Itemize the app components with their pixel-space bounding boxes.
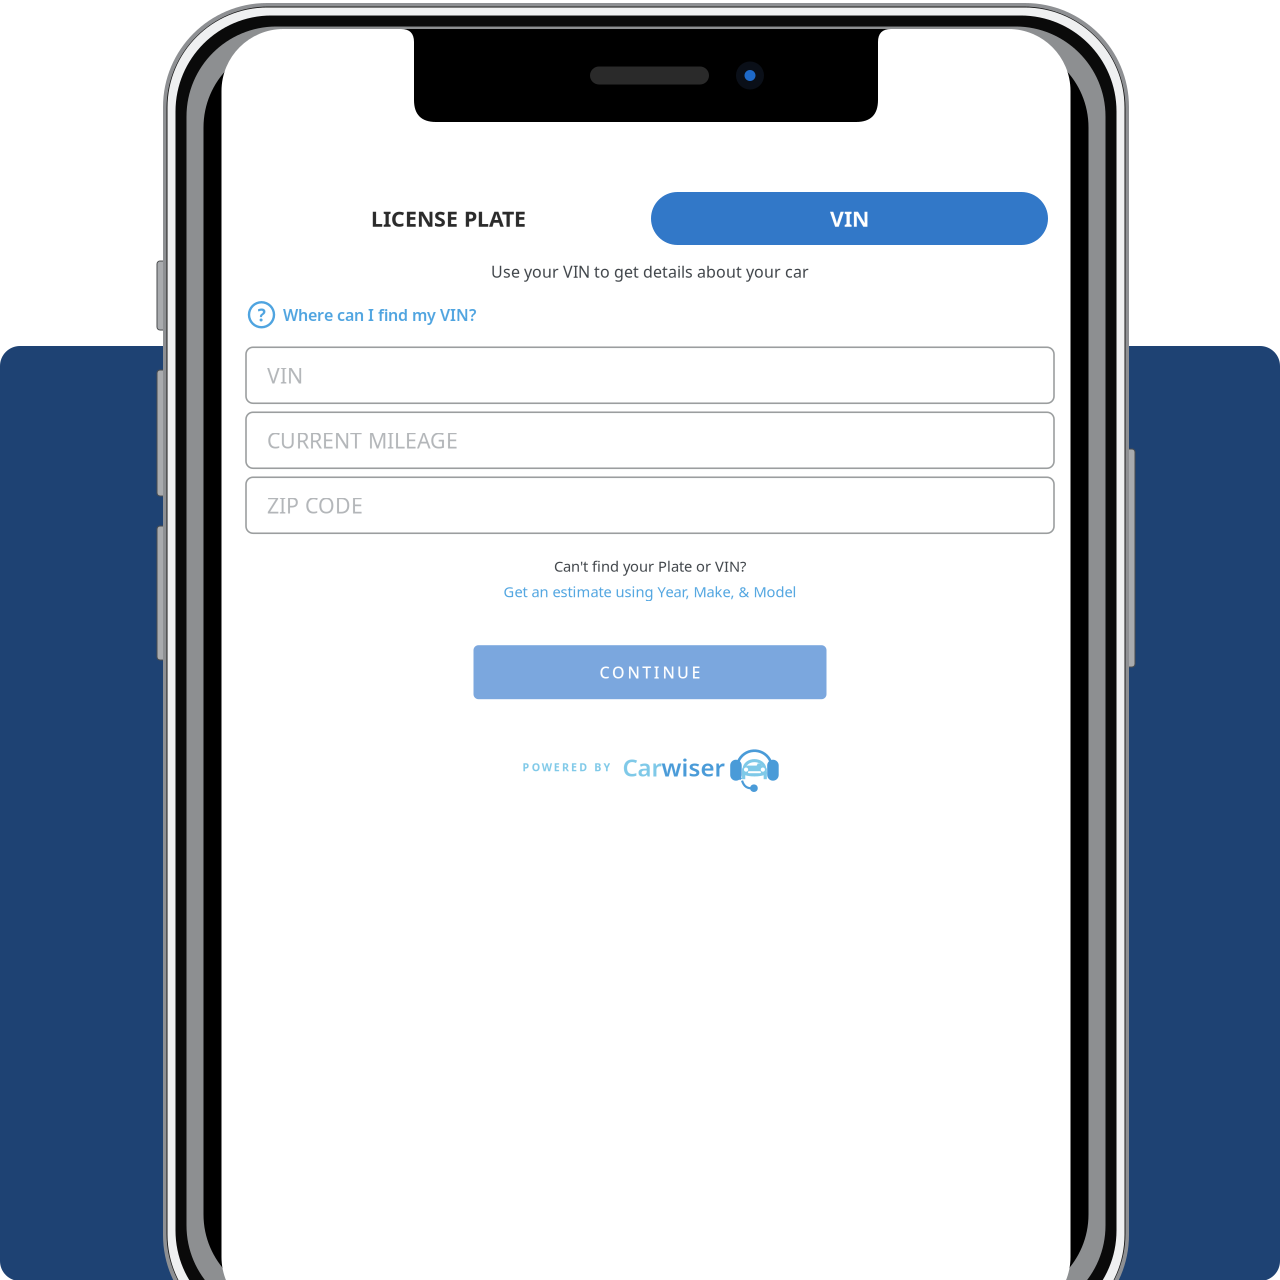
button[interactable]: Get an estimate using Year, Make, & Mode… — [503, 582, 796, 601]
staticText: Use your VIN to get details about your c… — [491, 261, 809, 282]
button[interactable]: VIN — [246, 347, 1054, 403]
button[interactable]: ? — [246, 302, 1054, 327]
button[interactable]: CONTINUE — [473, 645, 826, 699]
staticText: POWERED BY — [523, 760, 610, 774]
button[interactable]: VIN — [651, 192, 1048, 245]
staticText: CONTINUE — [599, 662, 701, 683]
staticText: wiser — [661, 751, 724, 783]
staticText: VIN — [830, 204, 869, 233]
staticText: Car — [622, 751, 661, 783]
staticText: Where can I find my VIN? — [283, 304, 476, 325]
button[interactable]: CURRENT MILEAGE — [246, 412, 1054, 468]
staticText: VIN — [267, 361, 303, 389]
staticText: CURRENT MILEAGE — [267, 426, 458, 454]
staticText: ? — [257, 303, 265, 326]
button[interactable]: LICENSE PLATE — [246, 192, 651, 245]
staticText: Get an estimate using Year, Make, & Mode… — [503, 582, 796, 601]
staticText: ZIP CODE — [267, 491, 363, 519]
staticText: Can't find your Plate or VIN? — [554, 556, 746, 576]
button[interactable]: ZIP CODE — [246, 477, 1054, 533]
staticText: LICENSE PLATE — [371, 204, 526, 233]
